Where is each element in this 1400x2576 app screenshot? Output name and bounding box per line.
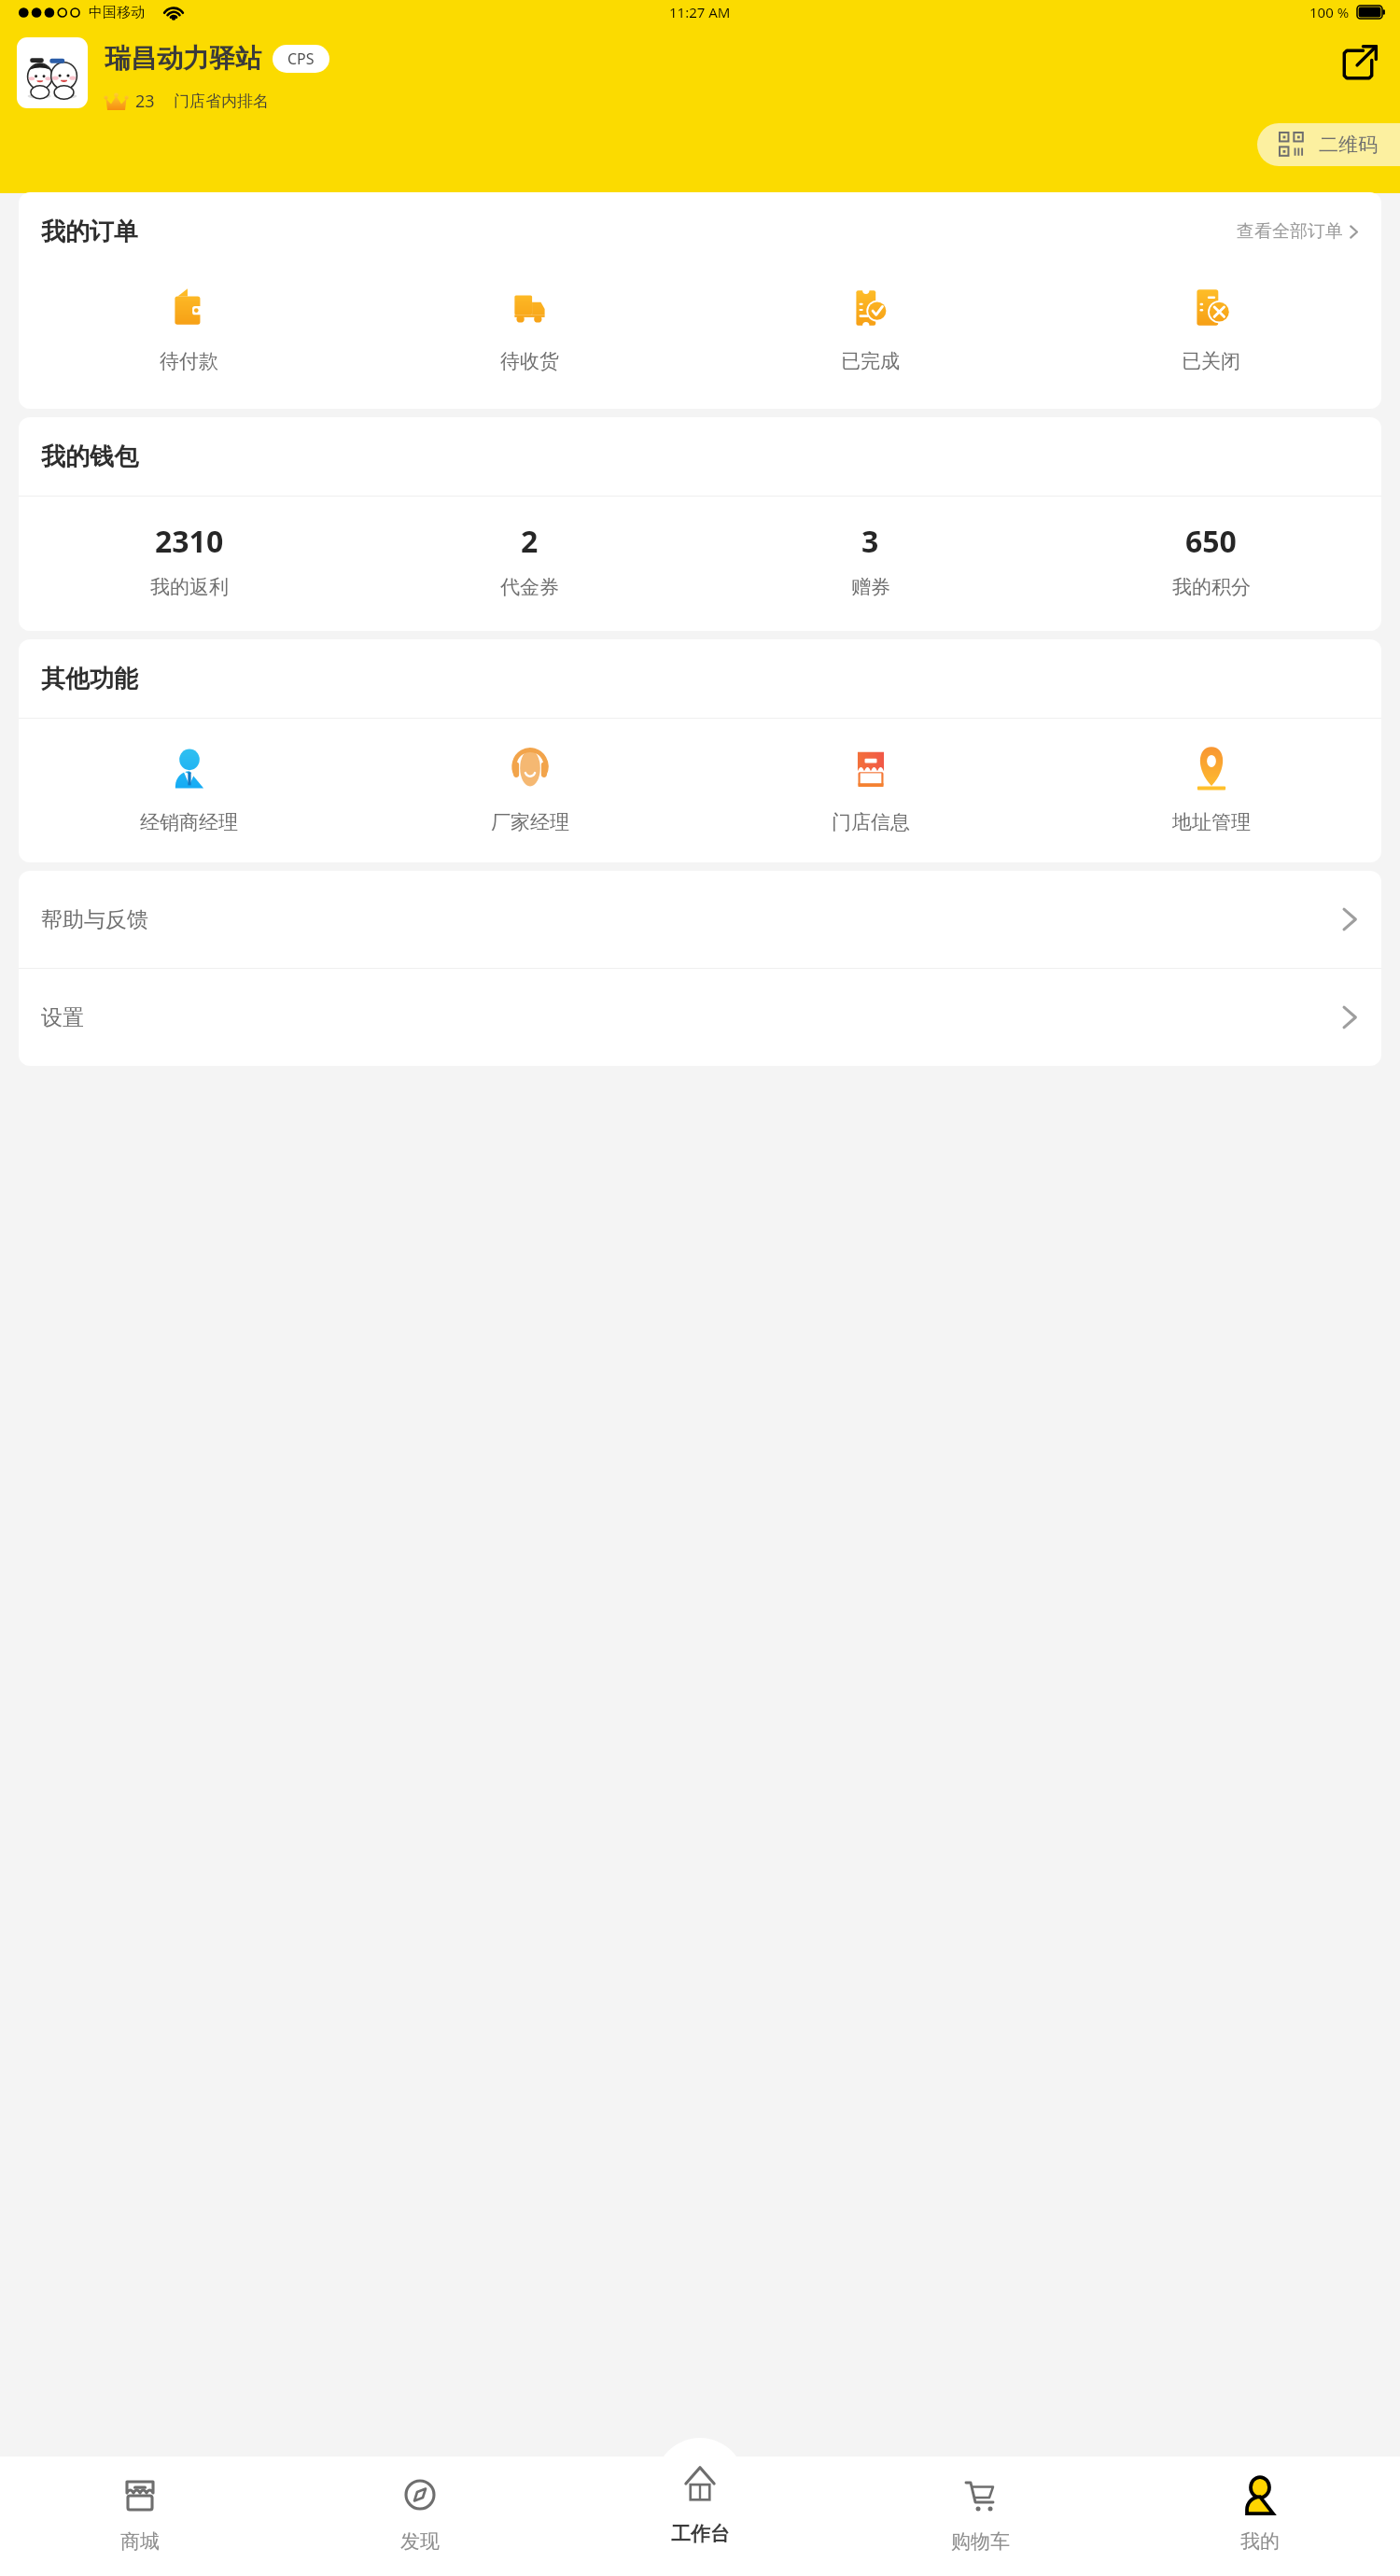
staticText: 2310 (155, 521, 224, 562)
staticText: CPS (287, 49, 315, 69)
staticText: 商城 (120, 2529, 160, 2554)
staticText: 查看全部订单 (1237, 220, 1343, 243)
staticText: 待付款 (160, 349, 218, 373)
button[interactable]: 分享 (1337, 43, 1379, 86)
staticText: 代金券 (500, 575, 559, 599)
staticText: 其他功能 (41, 664, 138, 694)
button[interactable]: 经销商经理 (19, 743, 359, 834)
staticText: 中国移动 (89, 4, 145, 21)
button[interactable]: 3 (700, 521, 1041, 599)
staticText: 购物车 (951, 2529, 1010, 2554)
button[interactable]: 已完成 (700, 278, 1041, 379)
button[interactable]: 门店信息 (700, 743, 1041, 834)
button[interactable]: 店铺头像 (17, 37, 88, 108)
button[interactable]: 2 (359, 521, 700, 599)
staticText: 瑞昌动力驿站 (105, 42, 261, 75)
staticText: 23 (135, 90, 155, 113)
staticText: 工作台 (671, 2522, 730, 2546)
button[interactable]: 发现 (280, 2457, 560, 2576)
button[interactable]: 厂家经理 (359, 743, 700, 834)
button[interactable]: CPS (273, 45, 329, 73)
button[interactable]: 待收货 (359, 278, 700, 379)
button[interactable]: 待付款 (19, 278, 359, 379)
staticText: 地址管理 (1172, 810, 1251, 834)
staticText: 我的积分 (1172, 575, 1251, 599)
staticText: 门店信息 (832, 810, 910, 834)
staticText: 我的订单 (41, 217, 138, 247)
staticText: 二维码 (1319, 133, 1378, 157)
button[interactable]: 帮助与反馈 (19, 871, 1381, 968)
staticText: 3 (861, 521, 879, 562)
button[interactable]: 设置 (19, 969, 1381, 1066)
button[interactable]: 我的订单 (19, 192, 1381, 271)
staticText: 帮助与反馈 (41, 906, 148, 933)
button[interactable]: 购物车 (840, 2457, 1120, 2576)
staticText: 已完成 (841, 349, 900, 373)
staticText: 2 (521, 521, 539, 562)
staticText: 已关闭 (1182, 349, 1240, 373)
button[interactable]: 工作台 (560, 2457, 840, 2576)
staticText: 发现 (400, 2529, 440, 2554)
staticText: 经销商经理 (140, 810, 238, 834)
button[interactable]: 已关闭 (1041, 278, 1381, 379)
staticText: 11:27 AM (669, 3, 731, 21)
staticText: 100 % (1309, 3, 1350, 21)
button[interactable]: 2310 (19, 521, 359, 599)
button[interactable]: 650 (1041, 521, 1381, 599)
staticText: 650 (1185, 521, 1237, 562)
staticText: 设置 (41, 1004, 84, 1031)
button[interactable]: 我的 (1120, 2457, 1400, 2576)
staticText: 我的返利 (150, 575, 229, 599)
staticText: 我的 (1240, 2529, 1280, 2554)
button[interactable]: 商城 (0, 2457, 280, 2576)
staticText: 门店省内排名 (174, 91, 269, 111)
button[interactable]: 地址管理 (1041, 743, 1381, 834)
staticText: 厂家经理 (491, 810, 569, 834)
staticText: 我的钱包 (41, 441, 138, 472)
button[interactable]: 二维码 (1257, 123, 1400, 166)
staticText: 待收货 (500, 349, 559, 373)
staticText: 赠券 (851, 575, 890, 599)
